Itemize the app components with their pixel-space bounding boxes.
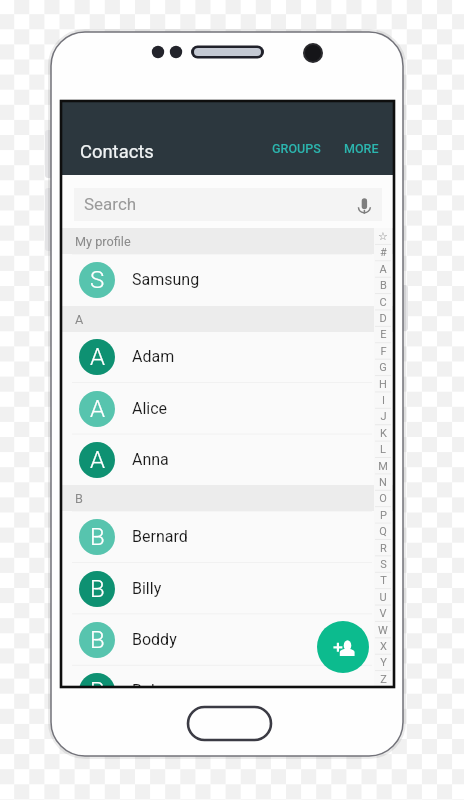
button[interactable]: A <box>374 261 392 277</box>
staticText: O <box>379 492 387 505</box>
staticText: C <box>379 296 387 309</box>
staticText: Alice <box>132 399 168 418</box>
staticText: S <box>90 266 105 294</box>
staticText: P <box>380 509 387 522</box>
button[interactable]: K <box>374 425 392 441</box>
button[interactable]: ☆ <box>374 228 392 244</box>
button[interactable]: C <box>374 294 392 310</box>
staticText: Y <box>380 656 387 669</box>
staticText: ☆ <box>378 230 388 243</box>
staticText: L <box>380 443 386 456</box>
button[interactable]: A <box>61 434 394 485</box>
staticText: My profile <box>75 234 131 249</box>
button[interactable]: B <box>61 563 394 614</box>
staticText: Bob <box>132 681 161 687</box>
staticText: F <box>380 345 387 358</box>
staticText: R <box>380 542 387 555</box>
staticText: J <box>380 410 387 423</box>
button[interactable]: S <box>61 254 394 305</box>
button[interactable]: P <box>374 507 392 523</box>
button[interactable]: Voice search <box>354 193 376 217</box>
staticText: B <box>90 626 105 654</box>
button[interactable]: E <box>374 326 392 342</box>
button[interactable]: J <box>374 408 392 424</box>
staticText: D <box>379 312 387 325</box>
staticText: Bernard <box>132 527 188 546</box>
button[interactable]: H <box>374 376 392 392</box>
button[interactable]: # <box>374 244 392 260</box>
button[interactable]: T <box>374 572 392 588</box>
button[interactable]: GROUPS <box>265 136 328 161</box>
button[interactable]: L <box>374 441 392 457</box>
button[interactable]: MORE <box>337 136 386 161</box>
staticText: N <box>379 476 387 489</box>
button[interactable]: A <box>61 383 394 434</box>
button[interactable]: X <box>374 638 392 654</box>
staticText: B <box>75 491 83 506</box>
staticText: Billy <box>132 579 162 598</box>
button[interactable]: Y <box>374 654 392 670</box>
button[interactable]: Z <box>374 671 392 687</box>
staticText: E <box>380 328 387 341</box>
staticText: B <box>90 575 105 603</box>
staticText: U <box>379 591 387 604</box>
staticText: I <box>382 394 385 407</box>
button[interactable]: S <box>374 556 392 572</box>
staticText: A <box>75 312 84 327</box>
button[interactable]: I <box>374 392 392 408</box>
staticText: K <box>380 427 387 440</box>
button[interactable]: B <box>61 614 394 665</box>
button[interactable]: G <box>374 359 392 375</box>
button[interactable]: Search <box>74 188 382 221</box>
staticText: Adam <box>132 347 175 366</box>
button[interactable]: U <box>374 589 392 605</box>
staticText: W <box>378 624 388 637</box>
staticText: T <box>380 574 387 587</box>
button[interactable]: Q <box>374 523 392 539</box>
button[interactable]: M <box>374 458 392 474</box>
button[interactable]: D <box>374 310 392 326</box>
staticText: B <box>90 523 105 551</box>
staticText: Anna <box>132 450 169 469</box>
staticText: H <box>379 378 387 391</box>
button[interactable]: W <box>374 622 392 638</box>
staticText: B <box>380 279 387 292</box>
staticText: Contacts <box>80 141 154 163</box>
button[interactable]: F <box>374 343 392 359</box>
button[interactable]: N <box>374 474 392 490</box>
staticText: A <box>90 343 105 371</box>
button[interactable]: B <box>374 277 392 293</box>
button[interactable]: O <box>374 490 392 506</box>
button[interactable]: B <box>61 665 394 687</box>
button[interactable]: B <box>61 511 394 562</box>
staticText: Samsung <box>132 270 200 289</box>
staticText: A <box>90 395 105 423</box>
staticText: GROUPS <box>272 141 321 156</box>
staticText: A <box>379 263 387 276</box>
staticText: # <box>380 246 387 259</box>
staticText: Q <box>379 525 387 538</box>
staticText: Z <box>380 673 387 686</box>
button[interactable]: R <box>374 540 392 556</box>
staticText: Search <box>84 194 137 214</box>
button[interactable]: V <box>374 605 392 621</box>
staticText: X <box>380 640 387 653</box>
staticText: MORE <box>344 141 379 156</box>
staticText: A <box>90 446 105 474</box>
staticText: V <box>379 607 387 620</box>
button[interactable]: Add contact <box>317 621 369 673</box>
staticText: M <box>378 460 388 473</box>
staticText: Boddy <box>132 630 177 649</box>
staticText: G <box>379 361 387 374</box>
button[interactable]: A <box>61 331 394 382</box>
staticText: B <box>90 677 105 687</box>
staticText: S <box>380 558 387 571</box>
